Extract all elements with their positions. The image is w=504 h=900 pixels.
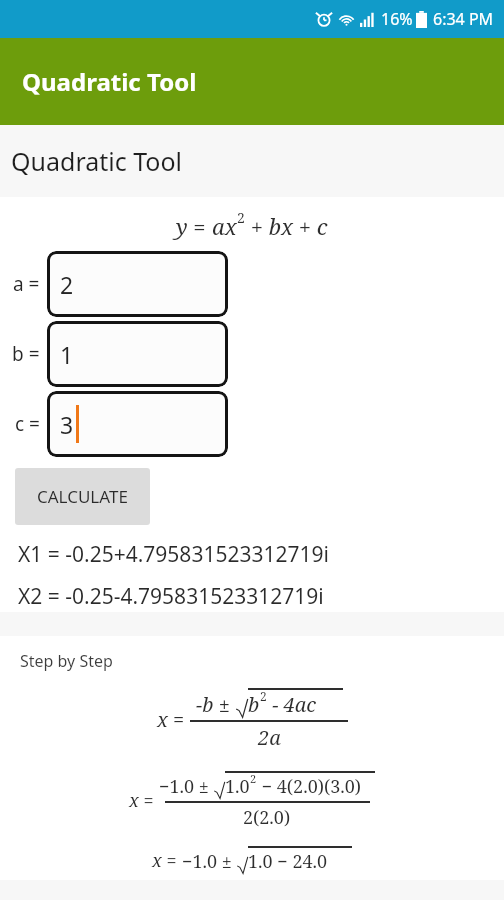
staticText: 2a [258,724,281,751]
staticText: 1.0 − 24.0 [248,849,328,874]
staticText: b = [12,341,40,367]
staticText: x = [152,848,182,873]
staticText: a = [13,271,40,297]
button[interactable]: CALCULATE [15,468,150,525]
staticText: 2(2.0) [243,805,291,830]
staticText: c = [15,411,40,437]
staticText: −b ± [196,691,236,718]
button[interactable]: Quadratic Tool [0,38,504,125]
staticText: CALCULATE [37,485,128,508]
staticText: X2 = -0.25-4.795831523312719i [18,582,324,611]
staticText: 6:34 PM [433,8,494,30]
staticText: 2 [60,269,74,300]
staticText: Quadratic Tool [11,144,183,178]
staticText: + bx + c [245,211,328,241]
staticText: −1.0 ± [159,774,214,799]
staticText: − 4ac [267,691,317,718]
staticText: x = [157,706,190,733]
staticText: 1 [60,339,74,370]
staticText: 3 [60,409,74,440]
staticText: 2 [260,688,267,704]
staticText: Step by Step [20,650,113,672]
staticText: X1 = -0.25+4.795831523312719i [18,540,329,569]
staticText: 2 [237,208,245,227]
button[interactable]: a = [0,249,504,319]
staticText: − 4(2.0)(3.0) [257,774,362,799]
button[interactable]: b = [0,319,504,389]
staticText: x = [129,788,159,813]
staticText: 2 [250,771,257,786]
staticText: −1.0 ± [182,849,237,874]
staticText: b [248,691,260,718]
staticText: 16% [381,8,413,30]
staticText: ax [212,211,237,241]
staticText: 1.0 [225,774,250,799]
staticText: Quadratic Tool [22,65,197,98]
staticText: y = [176,211,212,241]
button[interactable]: c = [0,389,504,459]
